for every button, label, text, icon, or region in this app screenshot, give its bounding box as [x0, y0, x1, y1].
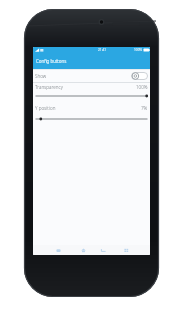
button[interactable]: Transparency: [33, 82, 150, 99]
button[interactable]: Show: [33, 69, 150, 82]
staticText: Transparency: [35, 84, 63, 90]
button[interactable]: [101, 248, 106, 253]
button[interactable]: [131, 72, 148, 80]
staticText: 21:41: [98, 48, 107, 52]
staticText: 100%: [136, 84, 148, 90]
button[interactable]: [124, 248, 129, 253]
button[interactable]: [56, 248, 61, 253]
staticText: 7%: [141, 105, 148, 111]
staticText: Y position: [35, 105, 56, 111]
staticText: Config buttons: [36, 58, 67, 64]
button[interactable]: [81, 248, 86, 253]
staticText: 100%: [134, 48, 143, 52]
button[interactable]: Y position: [33, 103, 150, 122]
staticText: Show: [35, 73, 47, 79]
